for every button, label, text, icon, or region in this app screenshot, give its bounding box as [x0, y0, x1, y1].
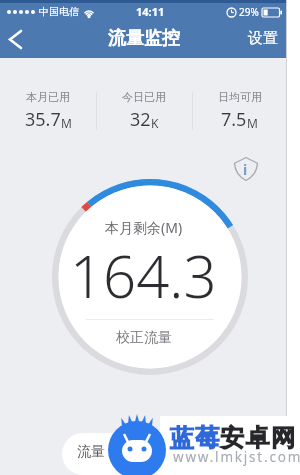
staticText: K	[151, 115, 159, 131]
staticText: 流量监控	[108, 27, 180, 50]
button[interactable]: 设置	[248, 30, 278, 49]
staticText: 日均可用	[218, 90, 262, 104]
button[interactable]	[0, 21, 30, 58]
staticText: M	[247, 115, 258, 131]
staticText: 安卓网	[220, 423, 297, 453]
staticText: 中国电信	[39, 5, 79, 18]
staticText: 今日已用	[122, 90, 166, 104]
button[interactable]: 今日已用	[96, 90, 192, 132]
staticText: 35.7	[25, 107, 61, 132]
staticText: 164.3	[70, 236, 217, 315]
staticText: 蓝莓	[169, 423, 220, 453]
staticText: 14:11	[136, 4, 165, 19]
button[interactable]: 校正流量	[84, 326, 204, 350]
staticText: 32	[130, 107, 151, 132]
staticText: 本月剩余(M)	[105, 218, 183, 237]
staticText: 7.5	[221, 107, 247, 132]
staticText: www.lmkjst.com	[173, 448, 300, 466]
staticText: 流量	[77, 443, 105, 461]
staticText: 校正流量	[116, 329, 172, 347]
staticText: 本月已用	[26, 90, 70, 104]
button[interactable]: i	[233, 156, 259, 182]
staticText: 29%	[239, 5, 259, 19]
button[interactable]: 本月已用	[0, 90, 96, 132]
button[interactable]: 日均可用	[192, 90, 287, 132]
staticText: 设置	[248, 29, 278, 48]
staticText: i	[243, 160, 248, 179]
staticText: M	[61, 115, 72, 131]
